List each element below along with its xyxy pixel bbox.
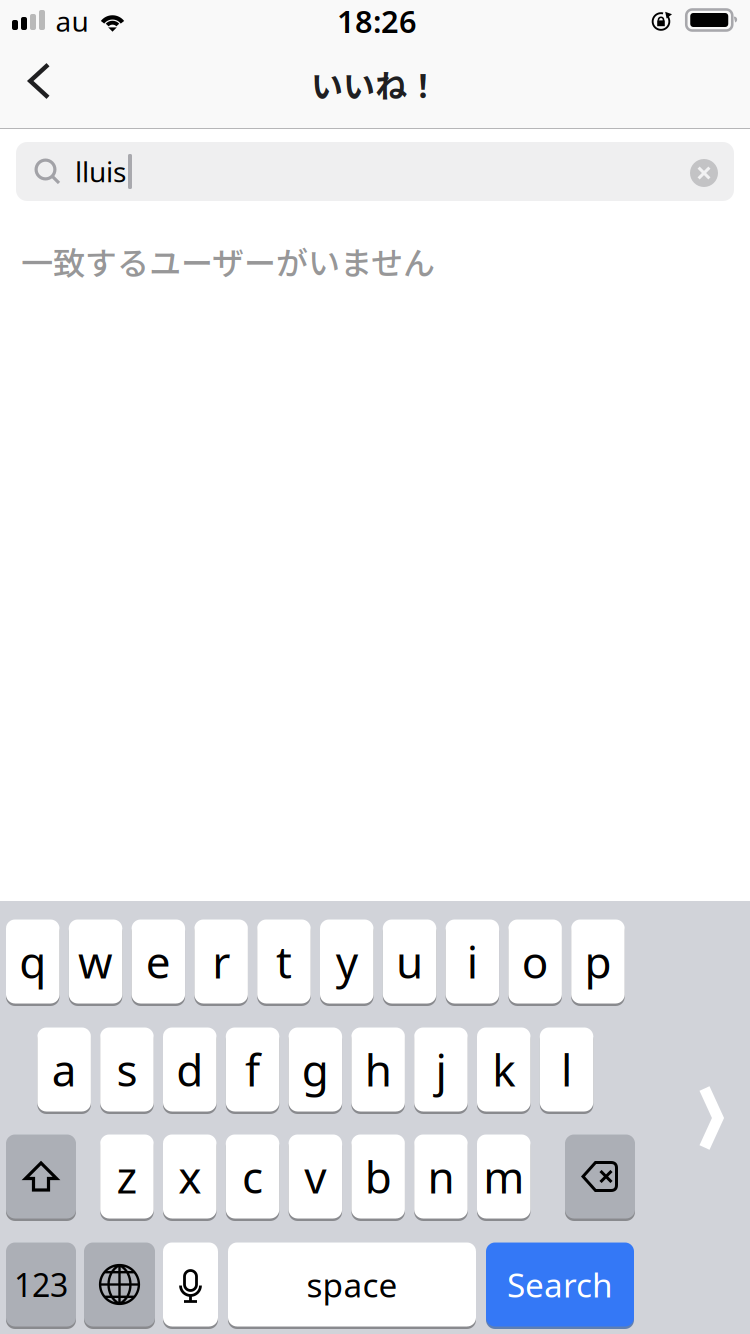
button[interactable]: y [320,918,373,1005]
button[interactable]: i [446,918,499,1005]
staticText: p [584,932,611,991]
staticText: b [365,1147,392,1206]
staticText: c [242,1147,263,1206]
staticText: t [276,932,292,991]
staticText: z [116,1147,137,1206]
button[interactable]: o [508,918,562,1005]
button[interactable]: n [414,1133,468,1220]
staticText: n [427,1147,454,1206]
button[interactable]: Expand keyboard [679,1068,743,1168]
button[interactable]: Shift [6,1133,76,1220]
button[interactable]: Numbers [6,1241,76,1328]
staticText: x [178,1147,201,1206]
button[interactable]: Clear text [678,142,734,201]
button[interactable]: a [37,1026,91,1113]
button[interactable]: e [132,918,185,1005]
button[interactable]: Dictation [163,1241,218,1328]
staticText: au [55,2,88,40]
staticText: 一致するユーザーがいません [21,238,435,284]
button[interactable]: l [540,1026,593,1113]
button[interactable]: Next keyboard [84,1241,155,1328]
staticText: s [116,1040,137,1099]
button[interactable]: z [100,1133,154,1220]
staticText: a [52,1040,77,1099]
staticText: m [483,1147,524,1206]
staticText: space [306,1262,397,1307]
staticText: r [212,932,230,991]
button[interactable]: t [257,918,311,1005]
button[interactable]: d [163,1026,216,1113]
button[interactable]: b [351,1133,405,1220]
staticText: 123 [14,1263,68,1306]
staticText: lluis [75,153,126,190]
button[interactable]: j [414,1026,468,1113]
staticText: q [19,932,46,991]
staticText: i [467,932,478,991]
staticText: いいね！ [311,61,439,107]
staticText: d [176,1040,203,1099]
button[interactable]: v [289,1133,342,1220]
button[interactable]: x [163,1133,216,1220]
staticText: Search [507,1262,613,1307]
staticText: h [365,1040,392,1099]
button[interactable]: space [228,1241,476,1328]
button[interactable]: k [477,1026,530,1113]
staticText: g [302,1040,329,1099]
staticText: j [435,1040,446,1099]
button[interactable]: f [226,1026,279,1113]
button[interactable]: w [69,918,122,1005]
button[interactable]: s [100,1026,154,1113]
button[interactable]: p [571,918,625,1005]
staticText: k [492,1040,515,1099]
staticText: l [561,1040,572,1099]
button[interactable]: Delete [565,1133,635,1220]
staticText: u [396,932,423,991]
button[interactable]: h [351,1026,405,1113]
staticText: y [336,932,358,991]
button[interactable]: m [477,1133,530,1220]
button[interactable]: u [383,918,436,1005]
button[interactable]: r [194,918,248,1005]
staticText: o [522,932,549,991]
staticText: v [304,1147,326,1206]
button[interactable]: c [226,1133,279,1220]
staticText: e [146,932,171,991]
staticText: 18:26 [337,1,417,41]
button[interactable]: Search [486,1241,634,1328]
button[interactable]: Back [0,48,78,128]
staticText: f [245,1040,260,1099]
button[interactable]: g [289,1026,342,1113]
staticText: w [78,932,113,991]
button[interactable]: q [6,918,59,1005]
